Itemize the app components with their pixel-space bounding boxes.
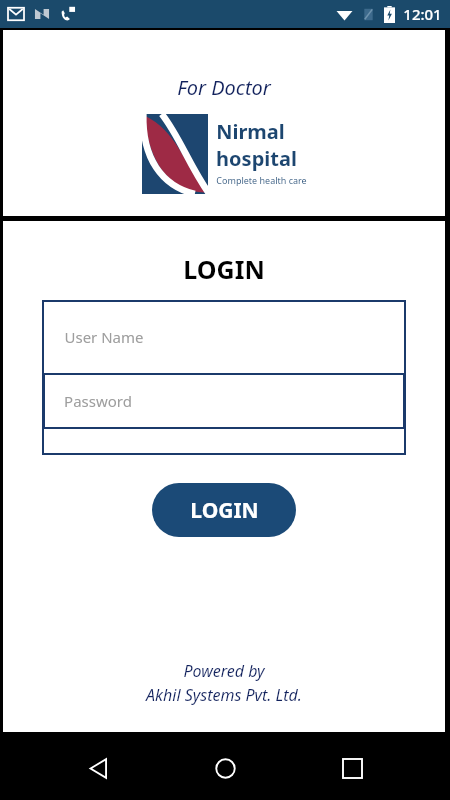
button[interactable]: Home xyxy=(196,739,254,797)
staticText: Nirmal xyxy=(216,118,285,145)
staticText: Powered by xyxy=(183,660,265,682)
button[interactable]: Password xyxy=(43,373,405,429)
staticText: Complete health care xyxy=(216,174,307,186)
button[interactable]: User Name xyxy=(42,300,406,373)
staticText: LOGIN xyxy=(183,252,265,286)
staticText: For Doctor xyxy=(177,74,271,101)
button[interactable]: Recent apps xyxy=(323,739,381,797)
button[interactable]: LOGIN xyxy=(152,483,296,537)
staticText: hospital xyxy=(216,145,297,172)
staticText: 12:01 xyxy=(403,4,442,24)
staticText: LOGIN xyxy=(190,496,259,525)
staticText: Password xyxy=(64,391,132,411)
staticText: User Name xyxy=(64,327,144,347)
staticText: Akhil Systems Pvt. Ltd. xyxy=(146,684,302,706)
button[interactable]: Back xyxy=(69,739,127,797)
